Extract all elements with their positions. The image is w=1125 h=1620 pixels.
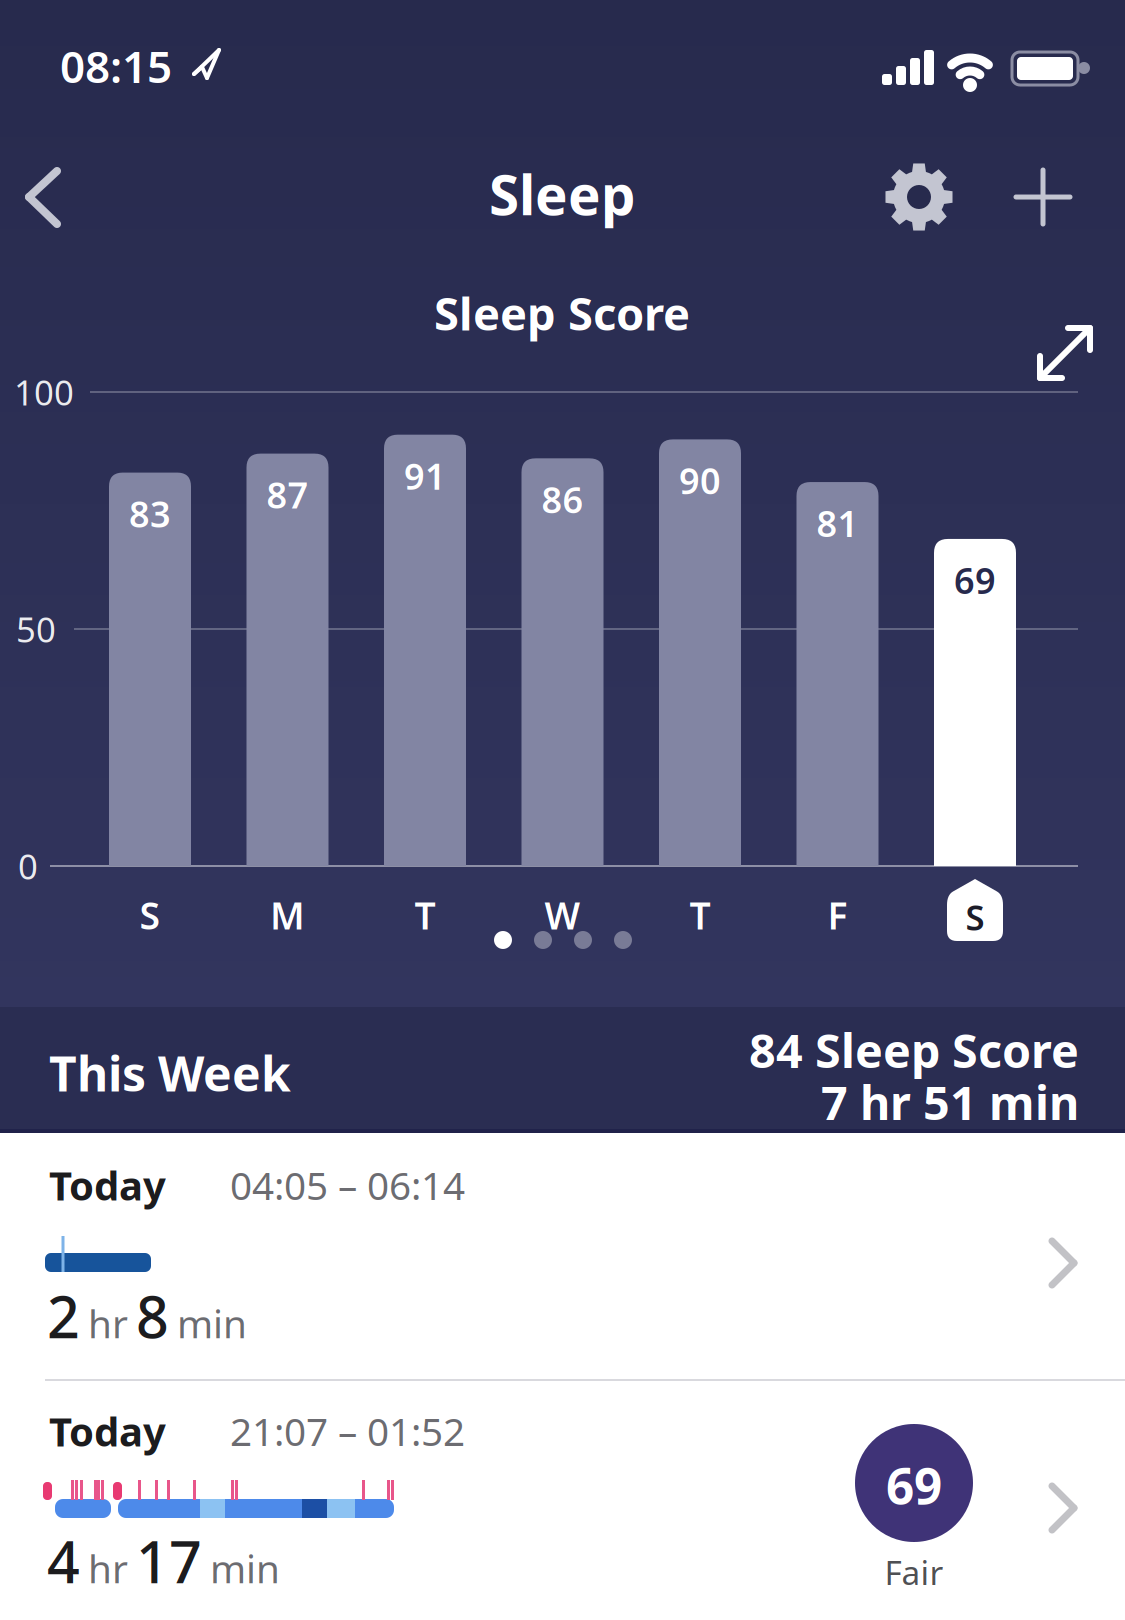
staticText: 04:05 – 06:14 — [230, 1159, 465, 1211]
staticText: Today — [49, 1158, 166, 1211]
button[interactable]: Today — [0, 1133, 1125, 1380]
staticText: 2 — [47, 1278, 80, 1354]
staticText: 86 — [541, 475, 583, 523]
staticText: 21:07 – 01:52 — [230, 1405, 465, 1457]
staticText: 100 — [14, 369, 74, 415]
button[interactable] — [0, 140, 110, 250]
staticText: 91 — [404, 452, 446, 500]
staticText: 8 — [136, 1278, 169, 1354]
staticText: 69 — [886, 1452, 942, 1518]
staticText: T — [414, 890, 435, 940]
staticText: Sleep — [489, 158, 636, 230]
staticText: 08:15 — [60, 37, 172, 95]
staticText: 84 Sleep Score — [749, 1019, 1079, 1081]
staticText: 4 — [47, 1523, 80, 1599]
staticText: S — [139, 890, 160, 940]
staticText: 87 — [266, 471, 308, 518]
staticText: hr — [88, 1297, 128, 1349]
staticText: Today — [49, 1404, 166, 1457]
staticText: min — [177, 1297, 247, 1349]
staticText: This Week — [49, 1041, 291, 1105]
button[interactable] — [870, 150, 968, 244]
staticText: 50 — [16, 606, 56, 652]
staticText: Fair — [884, 1550, 943, 1594]
staticText: 17 — [136, 1523, 202, 1599]
staticText: S — [965, 894, 984, 940]
staticText: 7 hr 51 min — [821, 1071, 1079, 1133]
staticText: M — [270, 890, 305, 940]
staticText: 90 — [679, 456, 721, 504]
staticText: 83 — [129, 490, 171, 537]
staticText: T — [689, 890, 710, 940]
button[interactable] — [999, 153, 1087, 241]
staticText: W — [544, 890, 580, 940]
staticText: hr — [88, 1542, 128, 1594]
staticText: min — [210, 1542, 280, 1594]
button[interactable]: Today — [0, 1381, 1125, 1620]
staticText: 81 — [816, 499, 858, 547]
staticText: Sleep Score — [434, 283, 690, 343]
staticText: 69 — [954, 556, 996, 604]
button[interactable] — [1018, 311, 1108, 401]
staticText: F — [827, 890, 847, 940]
staticText: 0 — [18, 843, 38, 889]
